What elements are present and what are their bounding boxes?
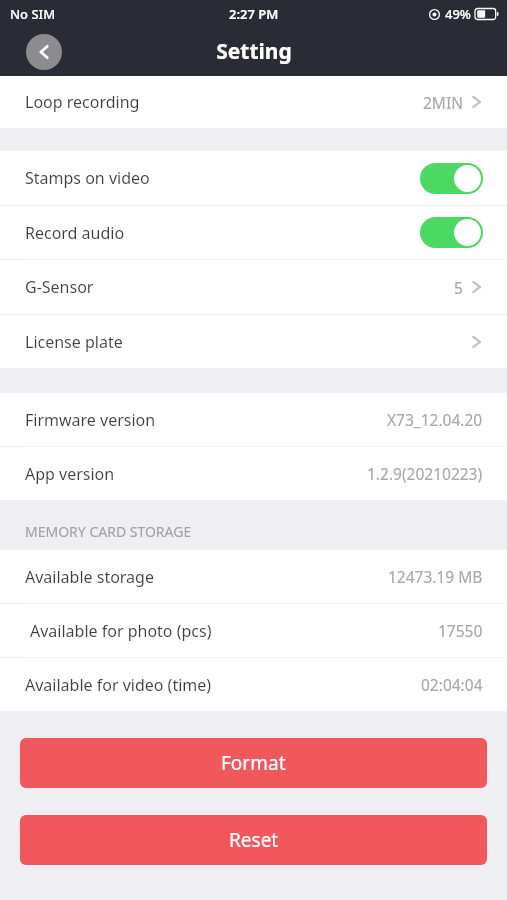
staticText: 02:04:04 [421,674,483,695]
staticText: App version [25,463,115,485]
staticText: Record audio [25,222,125,244]
staticText: No SIM [10,5,56,23]
button[interactable]: Reset [20,815,487,865]
staticText: 2MIN [423,92,463,113]
staticText: 12473.19 MB [388,566,483,587]
staticText: Reset [229,827,279,853]
staticText: 1.2.9(20210223) [367,463,483,484]
staticText: 2:27 PM [229,5,279,23]
button[interactable]: License plate [0,315,507,368]
button[interactable]: Back [26,34,62,70]
staticText: Available for video (time) [25,674,212,696]
staticText: Available storage [25,566,154,588]
button[interactable]: Loop recording [0,76,507,128]
button[interactable]: App version [0,447,507,500]
button[interactable]: Stamps on video [0,151,507,205]
button[interactable]: Firmware version [0,393,507,446]
staticText: 17550 [438,620,483,641]
staticText: Loop recording [25,91,140,113]
staticText: Stamps on video [25,167,150,189]
button[interactable]: G-Sensor [0,260,507,314]
button[interactable]: On [420,217,483,248]
staticText: License plate [25,331,123,353]
button[interactable]: On [420,163,483,194]
button[interactable]: Format [20,738,487,788]
button[interactable]: Available for photo (pcs) [0,604,507,657]
staticText: Available for photo (pcs) [30,620,212,642]
staticText: G-Sensor [25,276,94,298]
staticText: Format [221,750,286,776]
staticText: MEMORY CARD STORAGE [25,522,192,541]
button[interactable]: Available storage [0,550,507,603]
staticText: 49% [445,5,471,23]
staticText: Setting [216,37,292,66]
staticText: Firmware version [25,409,156,431]
button[interactable]: Record audio [0,206,507,259]
staticText: X73_12.04.20 [387,409,483,430]
staticText: 5 [454,277,463,298]
button[interactable]: Available for video (time) [0,658,507,711]
